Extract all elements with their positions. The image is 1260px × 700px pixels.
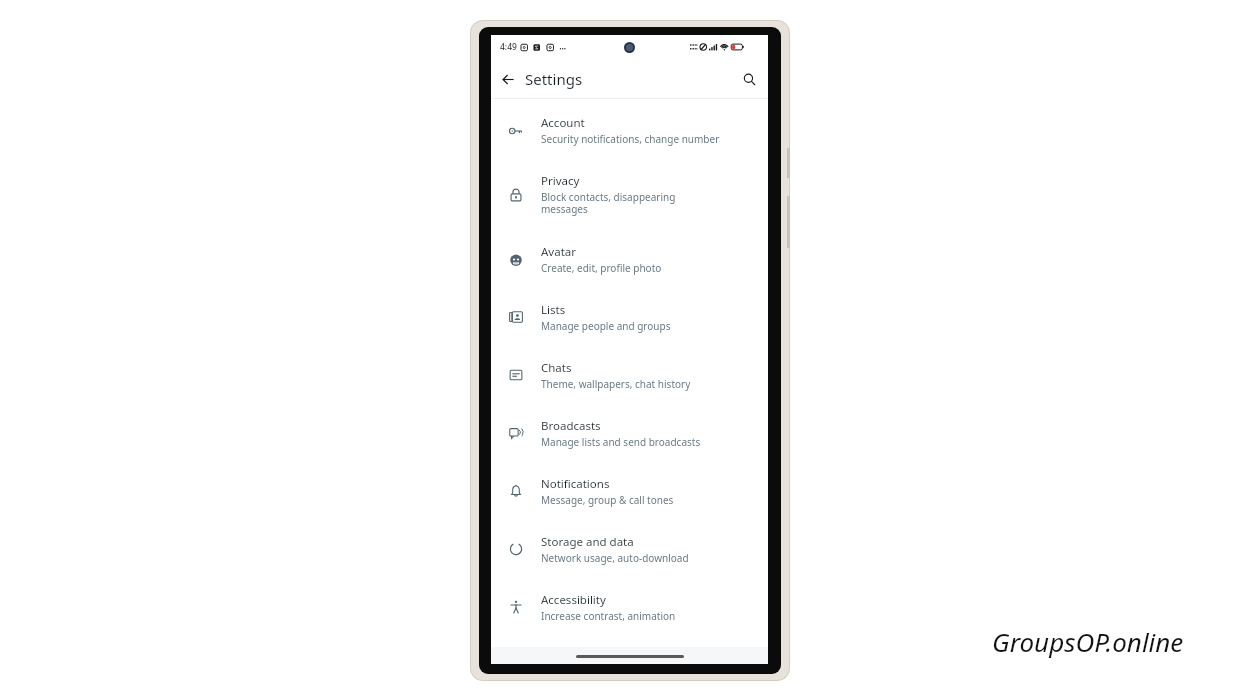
staticText: Notifications — [541, 476, 610, 492]
staticText: Message, group & call tones — [541, 493, 674, 507]
button[interactable]: Privacy — [491, 158, 768, 231]
staticText: Block contacts, disappearing messages — [541, 190, 676, 216]
staticText: Storage and data — [541, 534, 634, 550]
staticText: Manage lists and send broadcasts — [541, 435, 701, 449]
button[interactable]: Chats — [491, 346, 768, 404]
staticText: Account — [541, 115, 585, 131]
staticText: Accessibility — [541, 592, 606, 608]
staticText: Increase contrast, animation — [541, 609, 676, 623]
staticText: GroupsOP.online — [992, 624, 1184, 659]
button[interactable]: Notifications — [491, 462, 768, 520]
staticText: Theme, wallpapers, chat history — [541, 377, 691, 391]
staticText: Lists — [541, 302, 566, 318]
staticText: Broadcasts — [541, 418, 601, 434]
staticText: Avatar — [541, 244, 576, 260]
button[interactable]: Avatar — [491, 231, 768, 288]
button[interactable]: Broadcasts — [491, 404, 768, 462]
staticText: Chats — [541, 360, 572, 376]
staticText: Security notifications, change number — [541, 132, 720, 146]
button[interactable]: Lists — [491, 288, 768, 346]
button[interactable]: Back — [491, 59, 525, 99]
button[interactable]: Accessibility — [491, 578, 768, 636]
staticText: Create, edit, profile photo — [541, 261, 662, 275]
staticText: Manage people and groups — [541, 319, 671, 333]
button[interactable]: Account — [491, 103, 768, 158]
staticText: 4:49 — [500, 41, 517, 53]
staticText: Privacy — [541, 173, 580, 189]
staticText: Network usage, auto-download — [541, 551, 689, 565]
button[interactable]: Search — [730, 59, 768, 99]
staticText: Settings — [525, 69, 583, 89]
button[interactable]: Storage and data — [491, 520, 768, 578]
